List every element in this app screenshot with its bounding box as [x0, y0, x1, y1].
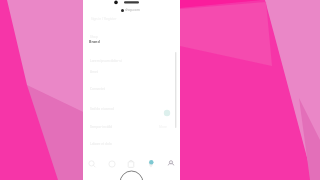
staticText: Amet [90, 70, 98, 74]
staticText: Brand [89, 39, 100, 44]
button[interactable]: Lorem ipsum dolor si [83, 59, 180, 72]
button[interactable]: Account [164, 157, 178, 171]
button[interactable]: Sed do eiusmod [83, 107, 180, 120]
staticText: Sed do eiusmod [90, 107, 115, 111]
staticText: Labore et dolo [90, 142, 112, 146]
staticText: shop.com [125, 8, 140, 12]
staticText: Tempor incidid [90, 125, 113, 129]
staticText: More [159, 125, 167, 129]
button[interactable]: Amet [83, 70, 180, 83]
staticText: Shop [90, 35, 98, 39]
button[interactable]: Bag [124, 157, 138, 171]
button[interactable]: Store locator [144, 157, 158, 171]
staticText: Lorem ipsum dolor si [90, 59, 122, 63]
staticText: Consectet [90, 87, 105, 91]
staticText: Sign in / Register [91, 17, 117, 21]
button[interactable]: Consectet [83, 87, 180, 100]
button[interactable]: Favourites [105, 157, 119, 171]
button[interactable]: Search [85, 157, 99, 171]
